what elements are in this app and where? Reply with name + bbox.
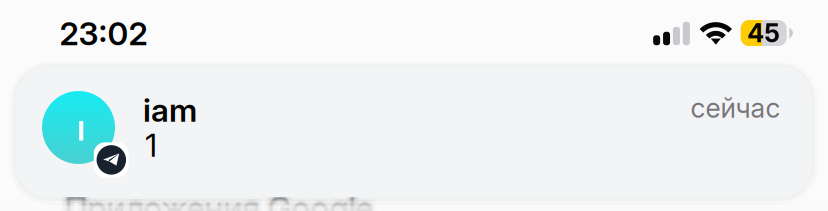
staticText: сейчас <box>690 92 780 124</box>
staticText: iam <box>143 91 197 129</box>
staticText: Приложения Google <box>64 192 373 211</box>
button[interactable]: iam <box>16 66 812 197</box>
staticText: Приложения Google <box>64 189 373 211</box>
staticText: 23:02 <box>59 14 147 53</box>
staticText: 1 <box>145 126 157 164</box>
staticText: Приложения Google <box>69 185 378 211</box>
staticText: Приложения Google <box>65 189 374 211</box>
staticText: Приложения Google <box>64 189 373 211</box>
staticText: Приложения Google <box>64 185 373 211</box>
staticText: Приложения Google <box>60 189 369 211</box>
staticText: Приложения Google <box>69 192 378 211</box>
staticText: Приложения Google <box>62 185 371 211</box>
staticText: Приложения Google <box>62 192 371 211</box>
staticText: 45 <box>747 18 780 48</box>
staticText: Приложения Google <box>62 189 371 211</box>
staticText: Приложения Google <box>64 188 373 211</box>
staticText: Приложения Google <box>67 185 376 211</box>
staticText: Приложения Google <box>67 192 376 211</box>
staticText: Приложения Google <box>69 189 378 211</box>
staticText: Приложения Google <box>65 188 374 211</box>
staticText: Приложения Google <box>67 189 376 211</box>
staticText: Приложения Google <box>60 185 369 211</box>
staticText: Приложения Google <box>60 192 369 211</box>
